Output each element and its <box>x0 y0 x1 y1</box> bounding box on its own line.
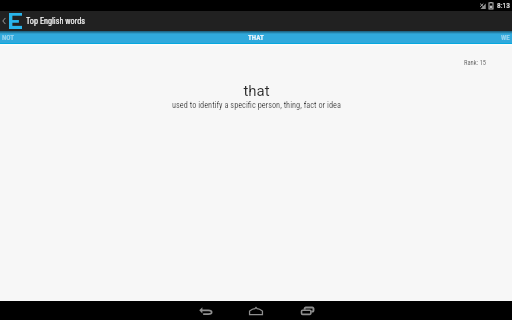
button[interactable]: Home <box>231 301 282 320</box>
staticText: THAT <box>248 34 264 42</box>
staticText: Top English words <box>26 16 85 26</box>
staticText: that <box>243 82 270 100</box>
button[interactable]: NOT <box>0 31 170 44</box>
button[interactable]: Recent apps <box>282 301 333 320</box>
staticText: NOT <box>2 34 15 42</box>
button[interactable]: Back <box>180 301 231 320</box>
button[interactable]: WE <box>341 31 512 44</box>
staticText: 8:13 <box>497 1 510 10</box>
staticText: used to identify a specific person, thin… <box>172 100 341 110</box>
staticText: Rank: 15 <box>464 59 487 67</box>
button[interactable]: Navigate up: Top English words <box>0 11 85 31</box>
button[interactable]: THAT <box>170 31 341 44</box>
staticText: WE <box>501 34 510 42</box>
